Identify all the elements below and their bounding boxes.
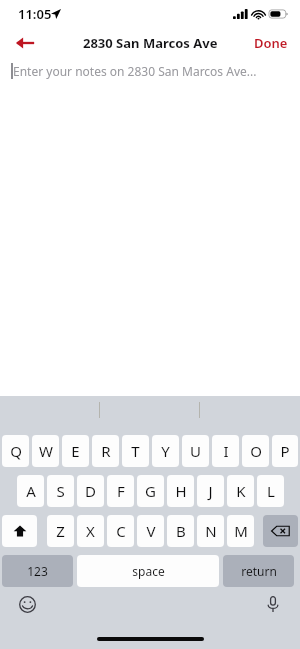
button[interactable]: W <box>32 435 59 467</box>
button[interactable]: T <box>122 435 149 467</box>
button[interactable]: 123 <box>2 555 73 587</box>
button[interactable]: Emoji <box>14 591 40 617</box>
staticText: K <box>236 481 246 501</box>
button[interactable]: space <box>77 555 219 587</box>
staticText: G <box>145 481 156 501</box>
button[interactable]: C <box>107 515 134 547</box>
button[interactable]: Z <box>47 515 74 547</box>
button[interactable]: U <box>182 435 209 467</box>
button[interactable]: Back <box>8 28 40 58</box>
button[interactable]: A <box>17 475 44 507</box>
staticText: return <box>241 563 277 579</box>
staticText: W <box>39 441 53 461</box>
button[interactable]: Dictation <box>260 591 286 617</box>
button[interactable]: F <box>107 475 134 507</box>
staticText: A <box>26 481 36 501</box>
staticText: M <box>234 521 248 541</box>
staticText: N <box>205 521 217 541</box>
staticText: I <box>223 441 229 461</box>
staticText: space <box>132 563 165 579</box>
button[interactable]: E <box>62 435 89 467</box>
button[interactable]: Backspace <box>263 515 298 547</box>
button[interactable]: H <box>167 475 194 507</box>
button[interactable]: K <box>227 475 254 507</box>
button[interactable]: X <box>77 515 104 547</box>
staticText: F <box>117 481 125 501</box>
staticText: C <box>116 521 126 541</box>
button[interactable]: N <box>197 515 224 547</box>
staticText: B <box>176 521 186 541</box>
staticText: 11:05 <box>18 5 52 23</box>
staticText: U <box>190 441 201 461</box>
staticText: T <box>131 441 140 461</box>
button[interactable]: I <box>212 435 239 467</box>
button[interactable]: M <box>227 515 254 547</box>
staticText: Q <box>10 441 22 461</box>
staticText: J <box>208 481 213 501</box>
staticText: P <box>280 441 290 461</box>
staticText: Enter your notes on 2830 San Marcos Ave.… <box>13 63 257 79</box>
staticText: 2830 San Marcos Ave <box>83 34 218 52</box>
staticText: V <box>146 521 156 541</box>
staticText: D <box>85 481 96 501</box>
button[interactable]: B <box>167 515 194 547</box>
staticText: Y <box>161 441 170 461</box>
staticText: S <box>56 481 65 501</box>
button[interactable]: G <box>137 475 164 507</box>
staticText: H <box>175 481 187 501</box>
button[interactable]: D <box>77 475 104 507</box>
button[interactable]: Enter your notes on 2830 San Marcos Ave.… <box>0 58 300 84</box>
button[interactable]: P <box>272 435 298 467</box>
button[interactable]: V <box>137 515 164 547</box>
staticText: Z <box>56 521 65 541</box>
button[interactable]: S <box>47 475 74 507</box>
button[interactable]: R <box>92 435 119 467</box>
staticText: O <box>250 441 262 461</box>
staticText: 123 <box>27 563 48 579</box>
staticText: L <box>267 481 275 501</box>
staticText: E <box>71 441 80 461</box>
button[interactable]: Shift <box>2 515 37 547</box>
staticText: Done <box>254 34 288 52</box>
button[interactable]: O <box>242 435 269 467</box>
button[interactable]: Done <box>242 30 300 56</box>
button[interactable]: Y <box>152 435 179 467</box>
staticText: R <box>101 441 111 461</box>
button[interactable]: Q <box>2 435 29 467</box>
button[interactable]: return <box>223 555 294 587</box>
staticText: X <box>86 521 95 541</box>
button[interactable]: J <box>197 475 224 507</box>
button[interactable]: L <box>257 475 284 507</box>
